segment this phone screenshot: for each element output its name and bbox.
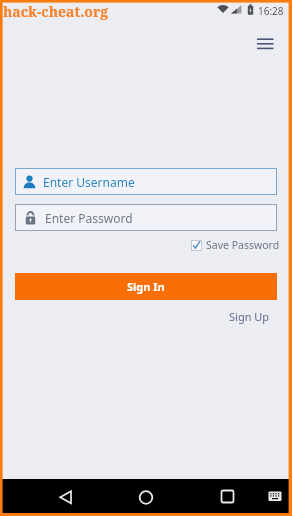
button[interactable]: Sign Up <box>224 306 274 326</box>
button[interactable] <box>126 479 166 516</box>
staticText: Save Password <box>206 238 280 252</box>
staticText: 16:28 <box>258 4 284 18</box>
staticText: Enter Username <box>43 174 135 190</box>
staticText: Sign Up <box>229 309 270 324</box>
button[interactable] <box>207 479 247 516</box>
button[interactable] <box>249 31 281 57</box>
staticText: hack-cheat.org <box>3 2 109 21</box>
button[interactable]: Enter Username <box>15 168 277 195</box>
button[interactable] <box>45 479 85 516</box>
staticText: Enter Password <box>45 210 133 226</box>
button[interactable]: Save Password <box>191 238 280 252</box>
button[interactable]: Enter Password <box>15 204 277 231</box>
staticText: Sign In <box>127 279 165 294</box>
button[interactable]: Sign In <box>15 273 277 300</box>
